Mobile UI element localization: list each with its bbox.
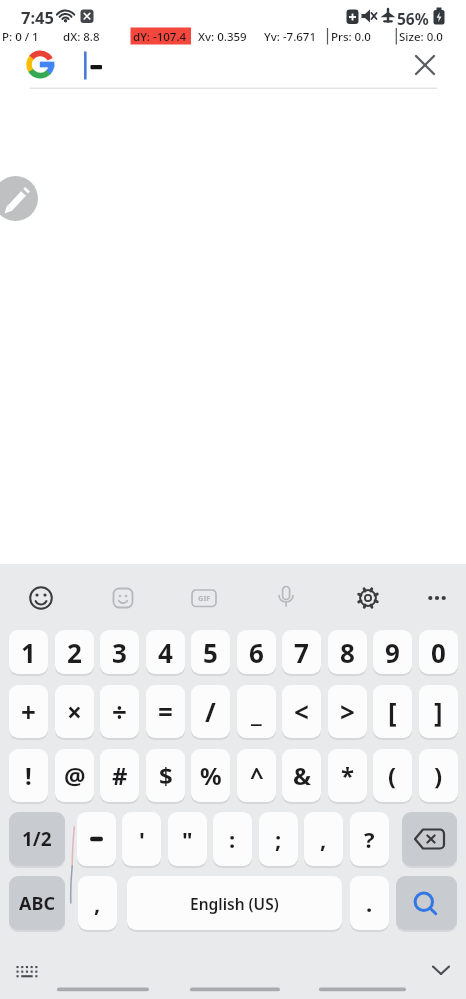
button[interactable]: 3 — [100, 630, 139, 674]
staticText: ÷ — [112, 694, 127, 729]
staticText: ' — [139, 824, 145, 854]
staticText: ] — [434, 694, 443, 729]
button[interactable] — [346, 576, 390, 620]
button[interactable] — [402, 812, 457, 866]
button[interactable]: ( — [373, 749, 412, 802]
staticText: $ — [159, 759, 173, 792]
staticText: Yv: -7.671 — [264, 29, 317, 45]
button[interactable] — [0, 176, 38, 221]
staticText: . — [366, 888, 373, 918]
staticText: < — [294, 694, 309, 729]
button[interactable]: 0 — [419, 630, 458, 674]
staticText: × — [67, 694, 82, 729]
button[interactable] — [415, 576, 459, 620]
button[interactable]: ; — [259, 812, 298, 866]
staticText: = — [158, 694, 173, 729]
button[interactable]: = — [146, 685, 185, 738]
button[interactable] — [19, 576, 63, 620]
button[interactable]: @ — [55, 749, 94, 802]
button[interactable]: 1 — [9, 630, 48, 674]
staticText: 0 — [431, 635, 446, 670]
staticText: + — [21, 694, 36, 729]
button[interactable] — [405, 45, 445, 85]
button[interactable]: $ — [146, 749, 185, 802]
button[interactable]: English (US) — [127, 876, 342, 930]
button[interactable]: 7 — [282, 630, 321, 674]
button[interactable]: & — [282, 749, 321, 802]
staticText: ) — [434, 759, 443, 792]
button[interactable]: * — [328, 749, 367, 802]
button[interactable] — [396, 876, 457, 930]
staticText: * — [341, 759, 355, 792]
button[interactable]: , — [78, 876, 117, 930]
button[interactable]: , — [304, 812, 343, 866]
staticText: dX: 8.8 — [63, 29, 100, 45]
button[interactable] — [264, 576, 308, 620]
button[interactable]: % — [191, 749, 230, 802]
staticText: 8 — [340, 635, 355, 670]
button[interactable]: 4 — [146, 630, 185, 674]
button[interactable]: # — [100, 749, 139, 802]
button[interactable]: ^ — [237, 749, 276, 802]
button[interactable]: 1/2 — [9, 812, 65, 866]
staticText: 7:45 — [21, 6, 54, 28]
button[interactable]: . — [350, 876, 389, 930]
button[interactable]: + — [9, 685, 48, 738]
staticText: 9 — [385, 635, 400, 670]
staticText: ; — [275, 824, 282, 854]
staticText: Prs: 0.0 — [331, 29, 371, 45]
staticText: 1 — [21, 635, 36, 670]
staticText: 6 — [249, 635, 264, 670]
button[interactable]: 8 — [328, 630, 367, 674]
button[interactable]: _ — [237, 685, 276, 738]
button[interactable]: > — [328, 685, 367, 738]
staticText: ( — [388, 759, 397, 792]
staticText: 7 — [294, 635, 309, 670]
button[interactable] — [8, 953, 44, 989]
button[interactable]: ÷ — [100, 685, 139, 738]
button[interactable]: × — [55, 685, 94, 738]
button[interactable]: < — [282, 685, 321, 738]
staticText: GIF — [198, 593, 211, 603]
button[interactable]: 6 — [237, 630, 276, 674]
button[interactable]: ' — [122, 812, 161, 866]
button[interactable]: GIF — [182, 576, 226, 620]
staticText: Xv: 0.359 — [198, 29, 247, 45]
button[interactable] — [422, 950, 460, 988]
button[interactable]: 2 — [55, 630, 94, 674]
staticText: 56% — [397, 8, 429, 29]
staticText: English (US) — [190, 893, 279, 914]
button[interactable] — [101, 576, 145, 620]
staticText: 5 — [203, 635, 218, 670]
button[interactable]: : — [213, 812, 252, 866]
button[interactable]: / — [191, 685, 230, 738]
staticText: # — [112, 759, 128, 792]
staticText: " — [182, 824, 193, 854]
button[interactable]: ABC — [9, 876, 65, 930]
staticText: 1/2 — [22, 826, 52, 852]
staticText: & — [293, 759, 311, 792]
button[interactable]: ) — [419, 749, 458, 802]
staticText: , — [94, 888, 101, 918]
staticText: Size: 0.0 — [399, 29, 443, 45]
staticText: % — [200, 759, 222, 792]
staticText: @ — [64, 759, 86, 792]
button[interactable]: " — [168, 812, 207, 866]
button[interactable] — [77, 812, 116, 866]
staticText: 3 — [112, 635, 127, 670]
staticText: ABC — [19, 891, 55, 916]
button[interactable]: ] — [419, 685, 458, 738]
button[interactable]: 9 — [373, 630, 412, 674]
staticText: > — [340, 694, 355, 729]
staticText: / — [205, 694, 216, 729]
button[interactable]: ? — [350, 812, 389, 866]
button[interactable]: 5 — [191, 630, 230, 674]
staticText: ^ — [250, 759, 264, 792]
button[interactable]: [ — [373, 685, 412, 738]
staticText: _ — [251, 694, 262, 729]
staticText: 2 — [67, 635, 82, 670]
staticText: : — [229, 824, 236, 854]
staticText: ? — [364, 824, 375, 854]
button[interactable]: ! — [9, 749, 48, 802]
staticText: 4 — [158, 635, 173, 670]
